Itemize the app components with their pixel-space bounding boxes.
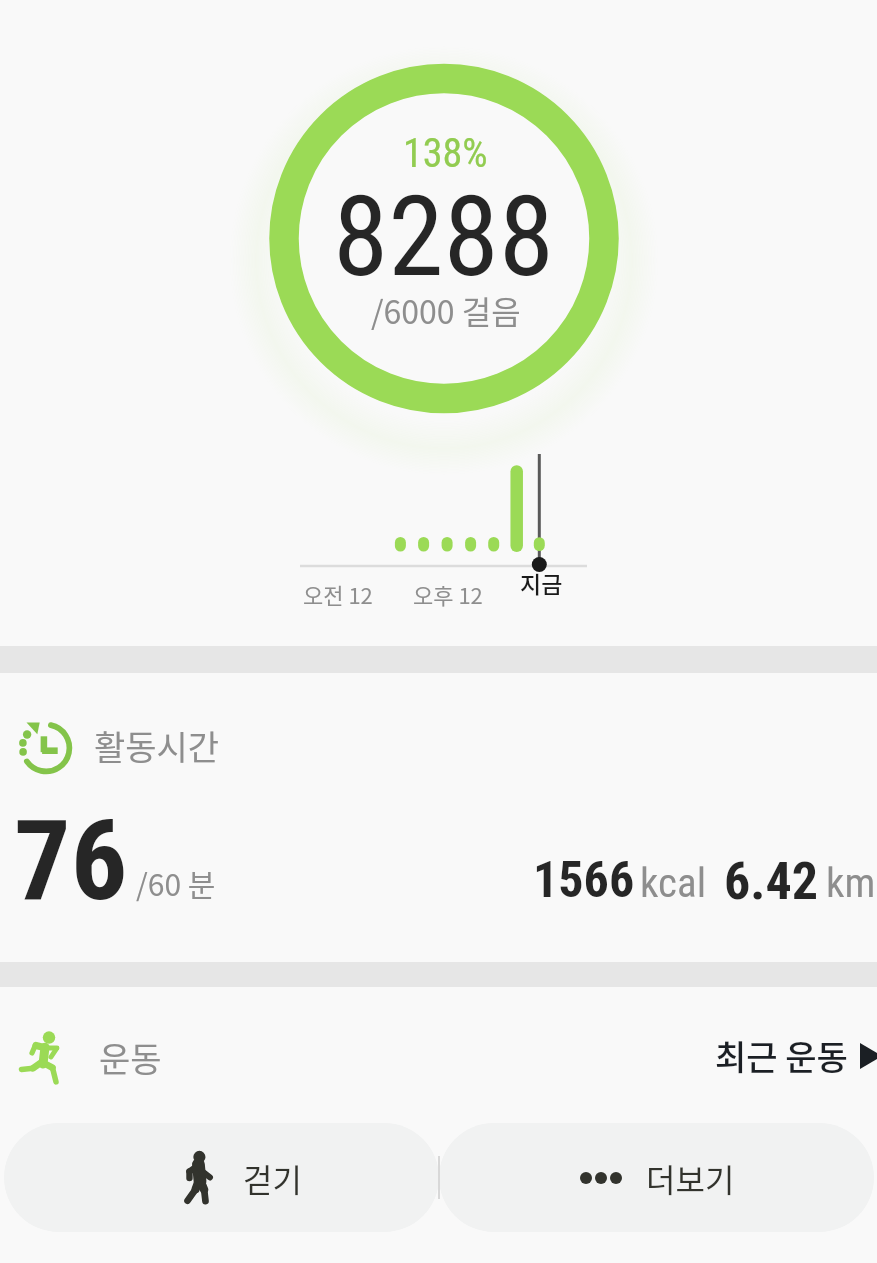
staticText: 최근 운동 — [715, 1031, 848, 1080]
staticText: /60 분 — [136, 861, 216, 904]
staticText: 걷기 — [243, 1155, 302, 1201]
staticText: 지금 — [520, 566, 563, 599]
button[interactable]: 걷기 — [4, 1123, 439, 1232]
staticText: 운동 — [99, 1033, 162, 1082]
staticText: kcal — [640, 859, 707, 907]
staticText: 8288 — [333, 171, 555, 302]
staticText: 오전 12 — [303, 578, 373, 610]
staticText: 6.42 — [724, 851, 819, 912]
staticText: 76 — [14, 795, 128, 926]
button[interactable]: 최근 운동 — [711, 1027, 877, 1084]
button[interactable]: 138% — [0, 0, 877, 446]
staticText: 1566 — [533, 851, 635, 910]
staticText: km — [826, 859, 876, 907]
staticText: 오후 12 — [413, 578, 483, 610]
staticText: 138% — [403, 130, 488, 177]
other: Active time — [16, 718, 76, 778]
staticText: 더보기 — [646, 1155, 735, 1201]
staticText: /6000 걸음 — [371, 287, 521, 333]
other: Recent workouts — [860, 1043, 877, 1069]
button[interactable]: 더보기 — [439, 1123, 874, 1232]
button[interactable]: Active time — [0, 673, 877, 962]
staticText: 활동시간 — [94, 721, 220, 770]
